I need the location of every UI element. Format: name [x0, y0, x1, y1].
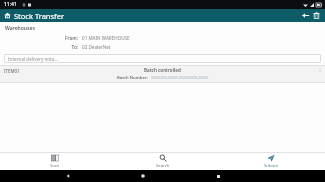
staticText: ITEM01 [4, 68, 20, 74]
staticText: From: [0, 35, 78, 41]
staticText: Submit [264, 163, 278, 169]
button[interactable]: More options [315, 65, 325, 75]
staticText: Stock Transfer [14, 11, 65, 21]
button[interactable]: Home [137, 170, 149, 182]
staticText: 01 MAIN WAREHOUSE [82, 35, 130, 41]
button[interactable]: Submit [217, 153, 325, 170]
staticText: Search [156, 163, 170, 169]
staticText: XXXXXXLXXXX-XXXXXXXLXXXX [151, 75, 209, 81]
button[interactable]: Home [3, 11, 12, 20]
button[interactable]: Undo [300, 10, 311, 21]
staticText: Batch controlled [144, 67, 181, 73]
button[interactable]: Recent apps [212, 170, 224, 182]
staticText: 02 DealerNet [82, 44, 111, 50]
staticText: Scan [50, 163, 60, 169]
button[interactable]: Scan [0, 153, 109, 170]
staticText: 11:41 [4, 1, 17, 8]
staticText: Batch Number: [117, 75, 148, 81]
button[interactable]: Search [109, 153, 217, 170]
button[interactable]: Back [62, 170, 74, 182]
button[interactable]: Delete [311, 10, 322, 21]
staticText: Warehouses [5, 25, 35, 32]
staticText: To: [0, 44, 78, 50]
staticText: Internal delivery note... [8, 56, 59, 62]
button[interactable]: Internal delivery note... [4, 54, 321, 63]
button[interactable]: ITEM01 [0, 65, 325, 83]
